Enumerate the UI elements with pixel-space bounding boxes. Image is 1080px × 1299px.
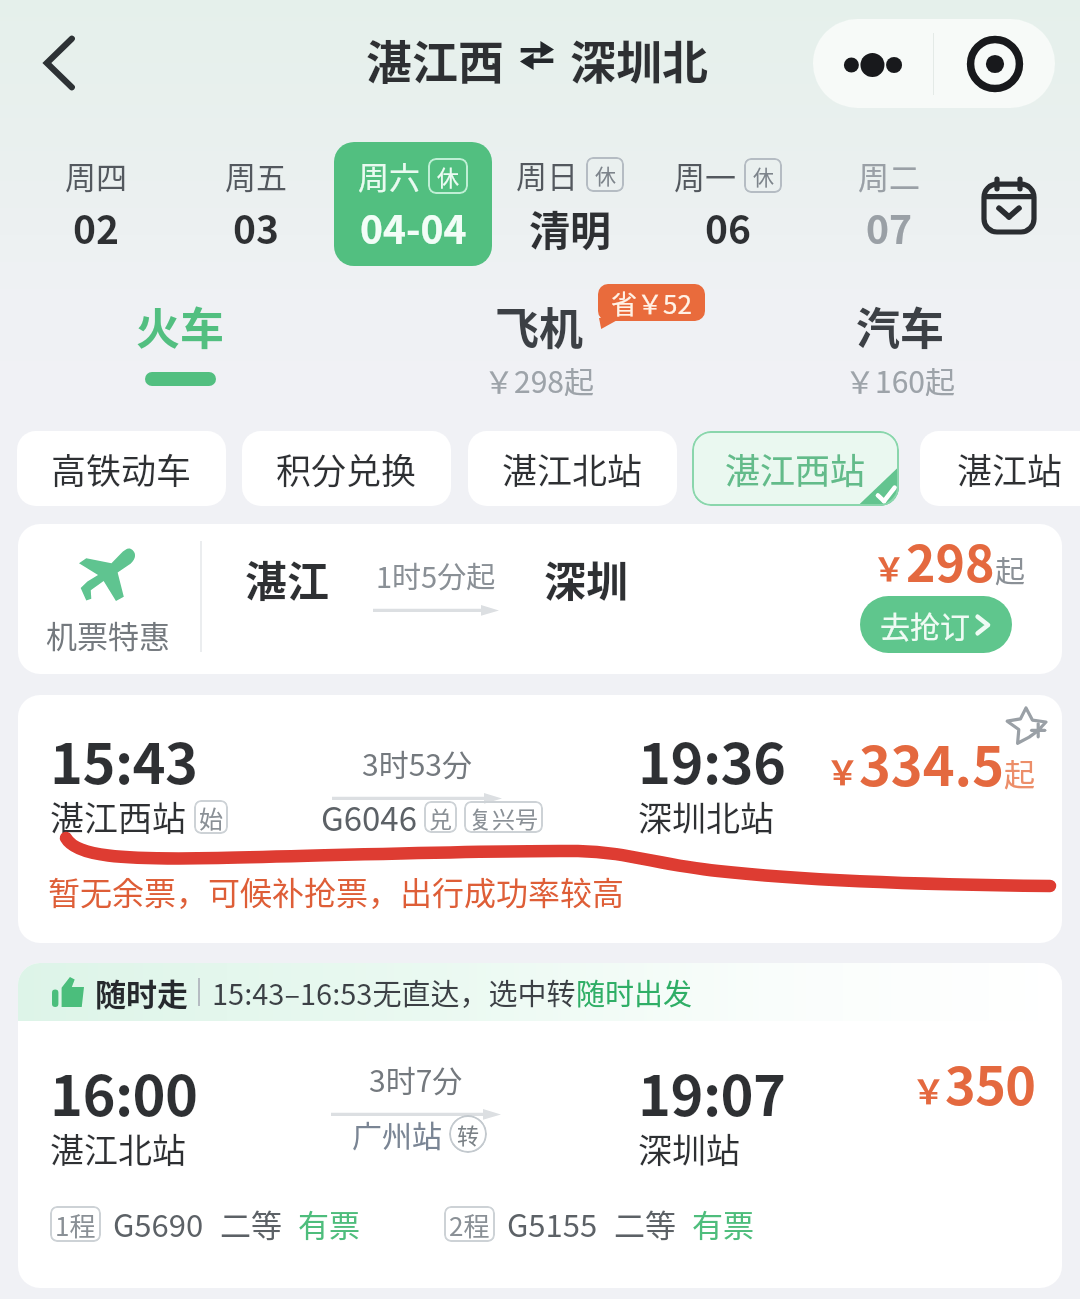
button[interactable]: 汽车 xyxy=(800,286,1000,396)
staticText: 深圳北站 xyxy=(638,792,774,841)
staticText: 有票 xyxy=(298,1201,360,1246)
staticText: 周六 xyxy=(358,153,420,198)
staticText: 19:07 xyxy=(638,1051,786,1132)
staticText: 湛江西站 xyxy=(725,443,866,494)
staticText: ￥ xyxy=(826,747,859,795)
staticText: 周四 xyxy=(65,153,127,198)
button[interactable]: Add to favorites xyxy=(996,695,1056,755)
staticText: 2程 xyxy=(449,1206,490,1242)
button[interactable] xyxy=(334,142,492,266)
staticText: 16:00 xyxy=(50,1051,198,1132)
staticText: 去抢订 xyxy=(880,603,970,646)
staticText: 二等 xyxy=(220,1201,282,1246)
staticText: 湛江西站 xyxy=(50,792,186,841)
button[interactable]: 飞机 xyxy=(439,286,639,396)
button[interactable]: 机票特惠 xyxy=(18,524,1062,674)
staticText: 03 xyxy=(233,199,280,255)
staticText: 省￥52 xyxy=(611,284,692,321)
button[interactable]: 周二 xyxy=(824,143,954,265)
staticText: 起 xyxy=(995,547,1025,590)
button[interactable]: 15:43 xyxy=(18,695,1062,943)
staticText: 随时出发 xyxy=(576,971,693,1013)
staticText: 飞机 xyxy=(495,294,583,358)
staticText: G6046 xyxy=(321,793,417,841)
staticText: 火车 xyxy=(136,294,224,358)
staticText: 随时走 xyxy=(95,970,188,1015)
staticText: 07 xyxy=(866,199,913,255)
staticText: 清明 xyxy=(529,198,611,257)
button[interactable]: 湛江西站 xyxy=(692,431,899,506)
staticText: 19:36 xyxy=(638,719,786,800)
staticText: 高铁动车 xyxy=(51,443,192,494)
staticText: 15:43 xyxy=(50,719,198,800)
button[interactable]: 周五 xyxy=(188,143,324,265)
staticText: ￥ xyxy=(912,1066,945,1114)
button[interactable]: 周一 xyxy=(655,143,801,265)
button[interactable]: Back xyxy=(24,28,94,98)
button[interactable]: 去抢订 xyxy=(860,596,1012,653)
staticText: G5690 xyxy=(113,1201,204,1246)
staticText: ￥298起 xyxy=(484,358,594,396)
staticText: 350 xyxy=(945,1045,1036,1120)
button[interactable]: 高铁动车 xyxy=(17,431,226,506)
staticText: 始 xyxy=(199,800,223,834)
staticText: 3时53分 xyxy=(362,741,472,784)
staticText: 休 xyxy=(595,160,616,190)
staticText: 深圳站 xyxy=(638,1124,740,1173)
button[interactable]: Calendar xyxy=(972,168,1046,242)
staticText: 积分兑换 xyxy=(276,443,417,494)
staticText: 04-04 xyxy=(360,199,467,255)
staticText: 有票 xyxy=(692,1201,754,1246)
staticText: 深圳北 xyxy=(570,26,708,84)
staticText: 06 xyxy=(705,199,752,255)
staticText: 湛江西 xyxy=(366,26,504,84)
button[interactable]: 火车 xyxy=(80,286,280,396)
staticText: 1程 xyxy=(55,1206,96,1242)
staticText: 暂无余票，可候补抢票，出行成功率较高 xyxy=(48,868,625,914)
staticText: 周二 xyxy=(858,153,920,198)
staticText: 湛江北站 xyxy=(50,1124,186,1173)
staticText: G5155 xyxy=(507,1201,598,1246)
staticText: 二等 xyxy=(614,1201,676,1246)
staticText: 休 xyxy=(437,160,460,192)
staticText: 周日 xyxy=(516,152,578,197)
staticText: 1时5分起 xyxy=(376,554,496,596)
staticText: 复兴号 xyxy=(469,801,538,833)
staticText: 15:43–16:53无直达，选中转 xyxy=(212,971,576,1013)
staticText: 湛江站 xyxy=(957,443,1063,494)
staticText: 3时7分 xyxy=(369,1057,463,1100)
staticText: 转 xyxy=(457,1118,480,1150)
button[interactable]: 湛江北站 xyxy=(468,431,677,506)
staticText: 周五 xyxy=(225,153,287,198)
staticText: 休 xyxy=(753,161,774,191)
button[interactable]: More options xyxy=(813,19,933,108)
staticText: 02 xyxy=(73,199,120,255)
button[interactable]: 周日 xyxy=(497,143,643,265)
staticText: 湛江 xyxy=(245,548,330,609)
staticText: 汽车 xyxy=(856,294,944,358)
button[interactable]: 随时走 xyxy=(18,963,1062,1288)
staticText: 起 xyxy=(1004,750,1035,795)
staticText: 广州站 xyxy=(352,1112,442,1155)
staticText: ￥160起 xyxy=(845,358,955,396)
button[interactable]: 积分兑换 xyxy=(242,431,451,506)
staticText: 深圳 xyxy=(544,548,629,609)
button[interactable]: Record xyxy=(934,19,1055,108)
button[interactable]: 周四 xyxy=(28,143,164,265)
staticText: 机票特惠 xyxy=(46,612,170,657)
staticText: ￥ xyxy=(873,544,906,590)
staticText: 湛江北站 xyxy=(502,443,643,494)
staticText: 298 xyxy=(906,524,995,596)
staticText: 周一 xyxy=(674,153,736,198)
button[interactable]: 湛江站 xyxy=(920,431,1080,506)
staticText: 兑 xyxy=(429,801,452,833)
staticText: 334.5 xyxy=(859,723,1004,801)
